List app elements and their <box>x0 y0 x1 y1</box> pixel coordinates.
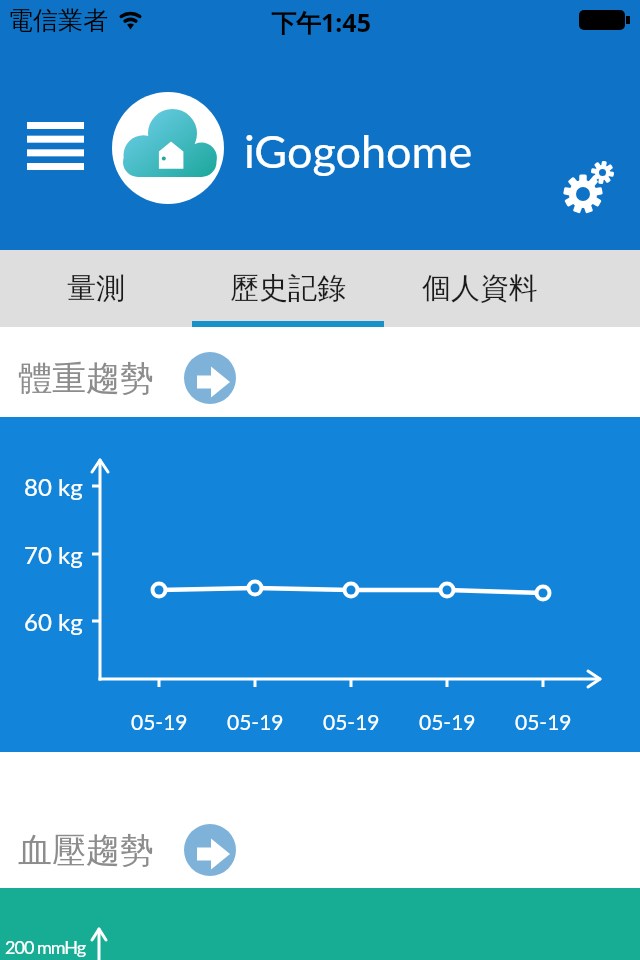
staticText: 個人資料 <box>422 270 538 307</box>
staticText: 05-19 <box>323 709 380 734</box>
staticText: 05-19 <box>131 709 188 734</box>
button[interactable]: 個人資料 <box>384 250 576 327</box>
button[interactable]: 歷史記錄 <box>192 250 384 327</box>
button[interactable] <box>184 352 236 404</box>
staticText: 血壓趨勢 <box>18 829 154 872</box>
button[interactable] <box>552 152 622 222</box>
staticText: 70 kg <box>24 540 83 569</box>
staticText: 05-19 <box>515 709 572 734</box>
staticText: 200 mmHg <box>5 936 86 958</box>
button[interactable]: 量測 <box>0 250 192 327</box>
staticText: 60 kg <box>24 607 83 636</box>
staticText: 80 kg <box>24 472 83 501</box>
staticText: 電信業者 <box>8 5 108 35</box>
staticText: 05-19 <box>419 709 476 734</box>
staticText: 下午1:45 <box>271 5 371 35</box>
staticText: 05-19 <box>227 709 284 734</box>
staticText: iGogohome <box>244 124 473 178</box>
staticText: 歷史記錄 <box>230 270 346 307</box>
button[interactable] <box>17 112 94 180</box>
staticText: 體重趨勢 <box>18 357 154 400</box>
staticText: 量測 <box>67 270 125 307</box>
button[interactable] <box>184 824 236 876</box>
